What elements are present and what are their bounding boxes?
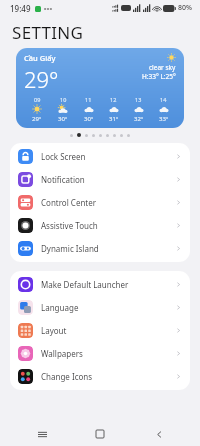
staticText: 19:49 xyxy=(10,3,31,14)
staticText: Assistive Touch xyxy=(41,220,98,231)
button[interactable]: Control Center xyxy=(10,191,190,214)
button[interactable]: Wallpapers xyxy=(10,342,190,365)
staticText: 11 xyxy=(85,96,92,103)
staticText: 30° xyxy=(84,115,94,123)
staticText: 80% xyxy=(178,3,192,13)
staticText: 29° xyxy=(24,64,59,94)
staticText: Wallpapers xyxy=(41,348,83,359)
staticText: Change Icons xyxy=(41,371,93,382)
staticText: SETTING xyxy=(12,21,84,44)
staticText: Cầu Giấy xyxy=(24,53,56,63)
staticText: 29° xyxy=(32,115,42,123)
staticText: 09 xyxy=(34,96,41,103)
staticText: Dynamic Island xyxy=(41,243,99,254)
staticText: Lock Screen xyxy=(41,151,86,162)
button[interactable]: Make Default Launcher xyxy=(10,273,190,296)
button[interactable]: Notification xyxy=(10,168,190,191)
staticText: 30° xyxy=(58,115,68,123)
button[interactable]: Back xyxy=(142,422,176,446)
staticText: 31° xyxy=(109,115,119,123)
button[interactable]: Change Icons xyxy=(10,365,190,388)
button[interactable]: Dynamic Island xyxy=(10,237,190,260)
staticText: Layout xyxy=(41,325,67,336)
button[interactable]: Cầu Giấy xyxy=(16,48,184,128)
staticText: 13 xyxy=(135,96,142,103)
button[interactable]: Assistive Touch xyxy=(10,214,190,237)
staticText: Language xyxy=(41,302,79,313)
button[interactable]: Recent apps xyxy=(25,422,59,446)
staticText: Notification xyxy=(41,174,85,185)
staticText: 32° xyxy=(134,115,144,123)
staticText: 12 xyxy=(110,96,117,103)
staticText: 33° xyxy=(159,115,169,123)
staticText: 10 xyxy=(60,96,67,103)
button[interactable]: Home xyxy=(83,422,117,446)
button[interactable]: Lock Screen xyxy=(10,145,190,168)
staticText: Control Center xyxy=(41,197,97,208)
button[interactable]: Layout xyxy=(10,319,190,342)
staticText: H:33° L:25° xyxy=(142,72,176,81)
staticText: Make Default Launcher xyxy=(41,279,129,290)
staticText: 14 xyxy=(160,96,167,103)
staticText: clear sky xyxy=(149,63,176,72)
button[interactable]: Language xyxy=(10,296,190,319)
